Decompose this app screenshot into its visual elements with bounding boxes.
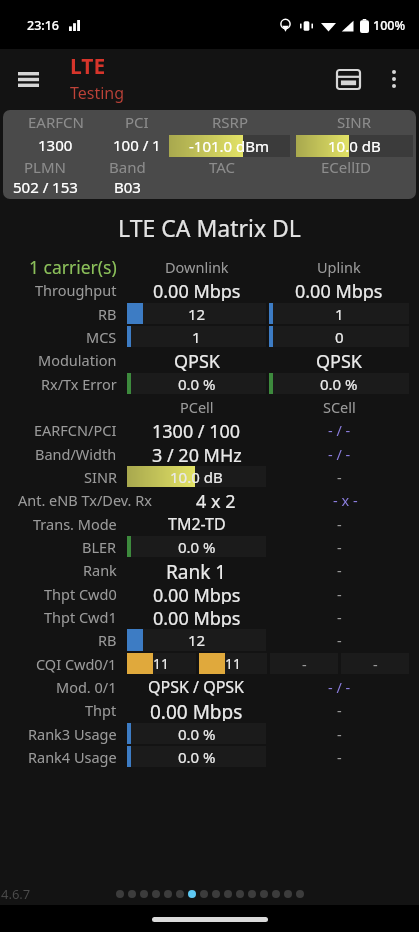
staticText: 0.0 % [320,374,358,394]
staticText: Band [109,157,146,177]
staticText: QPSK [174,349,220,371]
staticText: Throughput [35,280,117,300]
button[interactable]: Open navigation menu [8,59,48,99]
staticText: RSRP [212,112,248,132]
staticText: - [337,700,342,720]
staticText: TAC [209,157,236,177]
staticText: Mod. 0/1 [56,677,117,697]
staticText: RB [98,304,117,324]
staticText: 23:16 [27,17,60,34]
staticText: 11 [225,654,242,673]
staticText: EARFCN/PCI [34,420,117,440]
staticText: 0 [335,327,344,347]
staticText: QPSK [316,349,362,371]
staticText: 12 [188,304,206,324]
button[interactable]: Page 4 [152,890,160,898]
button[interactable]: Page 7 [188,890,196,898]
staticText: EARFCN [28,112,84,132]
staticText: 11 [153,654,170,673]
staticText: 0.00 Mbps [153,279,241,301]
button[interactable]: Page 16 [296,890,304,898]
staticText: RB [98,630,117,650]
staticText: Rx/Tx Error [41,374,117,394]
staticText: 4 x 2 [196,489,236,511]
staticText: SCell [323,397,356,417]
staticText: 502 / 153 [13,177,78,197]
staticText: 0.00 Mbps [295,279,383,301]
staticText: PCI [125,112,149,132]
button[interactable]: Page 5 [164,890,172,898]
staticText: - [337,747,342,767]
staticText: 1300 [38,135,73,155]
staticText: 100 / 1 [113,135,161,155]
staticText: Rank4 Usage [28,747,117,767]
staticText: Rank [83,560,117,580]
staticText: LTE CA Matrix DL [118,212,301,243]
staticText: 1300 / 100 [152,419,241,441]
button[interactable]: Page 14 [272,890,280,898]
staticText: - x - [333,490,358,510]
staticText: B03 [114,177,141,197]
staticText: - [337,514,342,534]
staticText: 0.00 Mbps [150,699,243,721]
staticText: - [373,654,378,674]
button[interactable]: Page 2 [128,890,136,898]
staticText: 10.0 dB [170,467,223,487]
staticText: ECellID [321,157,372,177]
staticText: 100% [373,17,406,34]
staticText: 0.0 % [178,374,216,394]
staticText: - [337,537,342,557]
button[interactable]: Page 3 [140,890,148,898]
staticText: 1 carrier(s) [29,255,117,278]
button[interactable]: Page 6 [176,890,184,898]
button[interactable]: Change layout [325,56,371,102]
button[interactable]: Page 15 [284,890,292,898]
staticText: SINR [337,112,372,132]
button[interactable]: Page 13 [260,890,268,898]
staticText: SINR [84,467,117,487]
staticText: 1 [335,304,344,324]
staticText: - / - [328,677,351,697]
staticText: -101.0 dBm [189,136,270,156]
staticText: - [337,560,342,580]
staticText: 10.0 dB [328,136,381,156]
button[interactable]: Page 9 [212,890,220,898]
staticText: - [337,584,342,604]
button[interactable]: Page 11 [236,890,244,898]
staticText: 0.00 Mbps [153,606,241,627]
button[interactable]: More options [371,56,417,102]
staticText: Thpt [85,700,117,720]
staticText: Rank3 Usage [28,724,117,744]
staticText: CQI Cwd0/1 [36,654,117,674]
staticText: QPSK / QPSK [148,676,245,697]
staticText: LTE [70,52,106,81]
staticText: - [337,607,342,627]
button[interactable]: Page 12 [248,890,256,898]
staticText: - / - [328,444,351,464]
button[interactable]: Page 8 [200,890,208,898]
staticText: Rank 1 [166,559,227,581]
staticText: 12 [188,630,206,650]
staticText: 0.0 % [178,747,216,767]
staticText: 1 [192,327,201,347]
button[interactable]: Page 1 [116,890,124,898]
staticText: BLER [82,537,117,557]
staticText: Downlink [165,257,229,277]
staticText: MCS [86,327,117,347]
staticText: 4.6.7 [1,885,31,903]
button[interactable]: Page 10 [224,890,232,898]
staticText: Band/Width [35,444,117,464]
staticText: 0.00 Mbps [153,583,241,604]
staticText: - [302,654,307,674]
staticText: Testing [70,82,125,104]
staticText: Ant. eNB Tx/Dev. Rx [18,490,152,510]
staticText: Thpt Cwd0 [44,584,117,604]
staticText: PCell [180,397,214,417]
staticText: PLMN [24,157,66,177]
staticText: Thpt Cwd1 [44,607,117,627]
staticText: - [337,630,342,650]
staticText: Trans. Mode [33,514,117,534]
staticText: - [337,724,342,744]
staticText: TM2-TD [168,513,226,534]
staticText: - [337,467,342,487]
